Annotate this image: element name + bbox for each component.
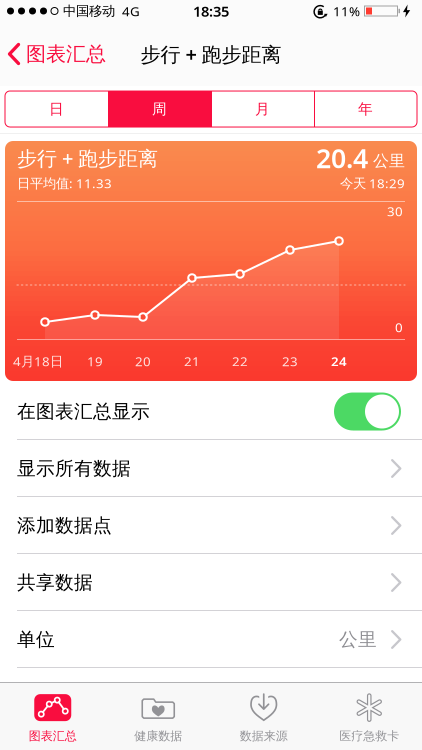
staticText: 11% [333,2,360,20]
staticText: 月 [255,100,270,118]
staticText: 18:35 [193,1,229,21]
staticText: 日 [49,100,64,118]
staticText: 22 [232,352,248,370]
button[interactable]: 图表汇总 [0,683,105,750]
button[interactable]: 共享数据 [0,554,422,611]
staticText: 公里 [339,628,377,651]
button[interactable]: 健康数据 [105,683,211,750]
button[interactable]: 图表汇总 [0,42,106,66]
staticText: 在图表汇总显示 [17,400,150,423]
staticText: 4月18日 [13,352,63,370]
staticText: 单位 [17,628,55,651]
staticText: 公里 [368,151,405,171]
button[interactable]: 年 [314,91,417,127]
staticText: 中国移动 [63,3,115,19]
staticText: 健康数据 [134,729,182,743]
button[interactable]: 在图表汇总显示 [334,392,401,430]
staticText: 0 [395,318,403,336]
staticText: 20.4 [316,140,368,176]
staticText: 今天 18:29 [340,174,405,192]
staticText: 图表汇总 [29,729,77,743]
staticText: 20 [135,352,151,370]
staticText: 步行 + 跑步距离 [140,41,281,67]
staticText: 24 [331,352,347,370]
staticText: 周 [152,100,167,118]
staticText: 显示所有数据 [17,457,131,480]
button[interactable]: 数据来源 [211,683,316,750]
button[interactable]: 周 [108,91,211,127]
staticText: 图表汇总 [26,42,106,66]
staticText: 30 [387,202,403,220]
button[interactable]: 医疗急救卡 [316,683,422,750]
staticText: 医疗急救卡 [339,729,399,743]
staticText: 21 [184,352,200,370]
staticText: 年 [358,100,373,118]
staticText: 数据来源 [240,729,288,743]
button[interactable]: 日 [5,91,108,127]
button[interactable]: 月 [211,91,314,127]
staticText: 步行 + 跑步距离 [17,145,158,171]
staticText: 4G [122,2,140,20]
staticText: 共享数据 [17,571,93,594]
staticText: 日平均值: 11.33 [17,174,112,192]
button[interactable]: 添加数据点 [0,497,422,554]
staticText: 19 [87,352,103,370]
button[interactable]: 单位 [0,611,422,668]
staticText: 23 [282,352,298,370]
button[interactable]: 显示所有数据 [0,440,422,497]
staticText: 添加数据点 [17,514,112,537]
